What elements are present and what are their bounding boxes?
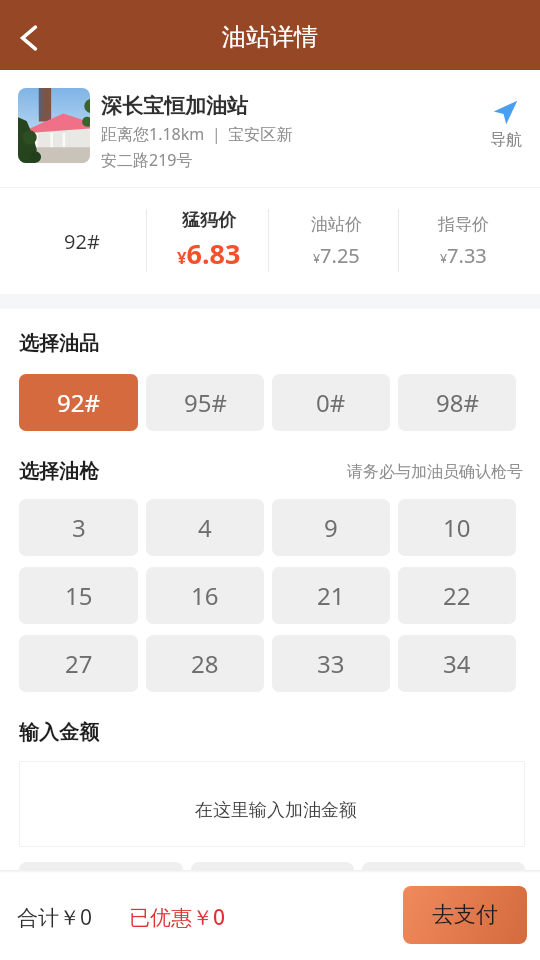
button[interactable]: 深长宝恒加油站	[0, 70, 540, 187]
staticText: 27	[65, 647, 93, 680]
staticText: ¥7.25	[313, 242, 360, 269]
button[interactable]: 0#	[272, 374, 390, 431]
staticText: ¥6.83	[177, 235, 241, 272]
staticText: 输入金额	[19, 720, 99, 745]
button[interactable]: 返回	[7, 16, 51, 60]
button[interactable]: 16	[146, 567, 264, 624]
button[interactable]: 导航	[476, 94, 536, 159]
button[interactable]: 21	[272, 567, 390, 624]
staticText: 请务必与加油员确认枪号	[347, 462, 523, 482]
other: 导航	[493, 100, 518, 125]
staticText: 16	[191, 579, 219, 612]
button[interactable]: 33	[272, 635, 390, 692]
button[interactable]: 95#	[146, 374, 264, 431]
button[interactable]: 4	[146, 499, 264, 556]
button[interactable]	[191, 862, 354, 912]
staticText: 选择油品	[19, 331, 99, 356]
button[interactable]: 去支付	[403, 886, 527, 944]
staticText: 34	[443, 647, 471, 680]
staticText: 92#	[64, 228, 100, 255]
button[interactable]: 27	[19, 635, 138, 692]
staticText: 距离您1.18km ｜ 宝安区新 安二路219号	[101, 123, 293, 170]
staticText: 22	[443, 579, 471, 612]
staticText: 15	[65, 579, 93, 612]
staticText: 在这里输入加油金额	[195, 799, 357, 822]
staticText: 28	[191, 647, 219, 680]
staticText: 猛犸价	[182, 209, 236, 232]
button[interactable]: 98#	[398, 374, 516, 431]
staticText: 去支付	[432, 901, 498, 929]
button[interactable]: 28	[146, 635, 264, 692]
staticText: 3	[72, 511, 86, 544]
staticText: ¥7.33	[440, 242, 487, 269]
button[interactable]: 3	[19, 499, 138, 556]
staticText: 选择油枪	[19, 459, 99, 484]
staticText: 33	[317, 647, 345, 680]
button[interactable]: 15	[19, 567, 138, 624]
button[interactable]: 10	[398, 499, 516, 556]
staticText: 4	[198, 511, 212, 544]
staticText: 合计￥0	[17, 903, 93, 932]
staticText: 油站价	[311, 214, 362, 235]
staticText: 导航	[490, 130, 522, 150]
button[interactable]: 22	[398, 567, 516, 624]
staticText: 98#	[436, 386, 479, 419]
staticText: 95#	[184, 386, 227, 419]
button[interactable]	[362, 862, 525, 912]
staticText: 深长宝恒加油站	[101, 93, 248, 119]
staticText: 油站详情	[222, 22, 318, 52]
button[interactable]	[19, 862, 183, 912]
button[interactable]: 在这里输入加油金额	[19, 761, 525, 847]
staticText: 92#	[57, 386, 100, 419]
staticText: 指导价	[438, 214, 489, 235]
staticText: 0#	[316, 386, 346, 419]
staticText: 9	[324, 511, 338, 544]
staticText: 21	[317, 579, 345, 612]
button[interactable]: 92#	[19, 374, 138, 431]
staticText: 10	[443, 511, 471, 544]
staticText: 已优惠￥0	[129, 903, 226, 932]
button[interactable]: 34	[398, 635, 516, 692]
button[interactable]: 9	[272, 499, 390, 556]
